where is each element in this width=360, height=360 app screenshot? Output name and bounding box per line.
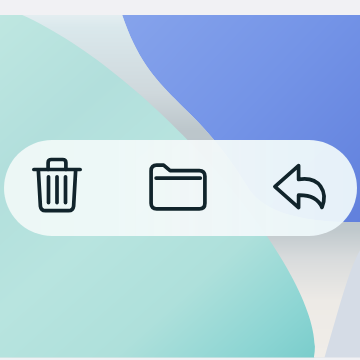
button[interactable]: Delete bbox=[25, 153, 89, 217]
button[interactable]: Move to folder bbox=[146, 155, 210, 219]
button[interactable]: Reply bbox=[268, 155, 332, 219]
